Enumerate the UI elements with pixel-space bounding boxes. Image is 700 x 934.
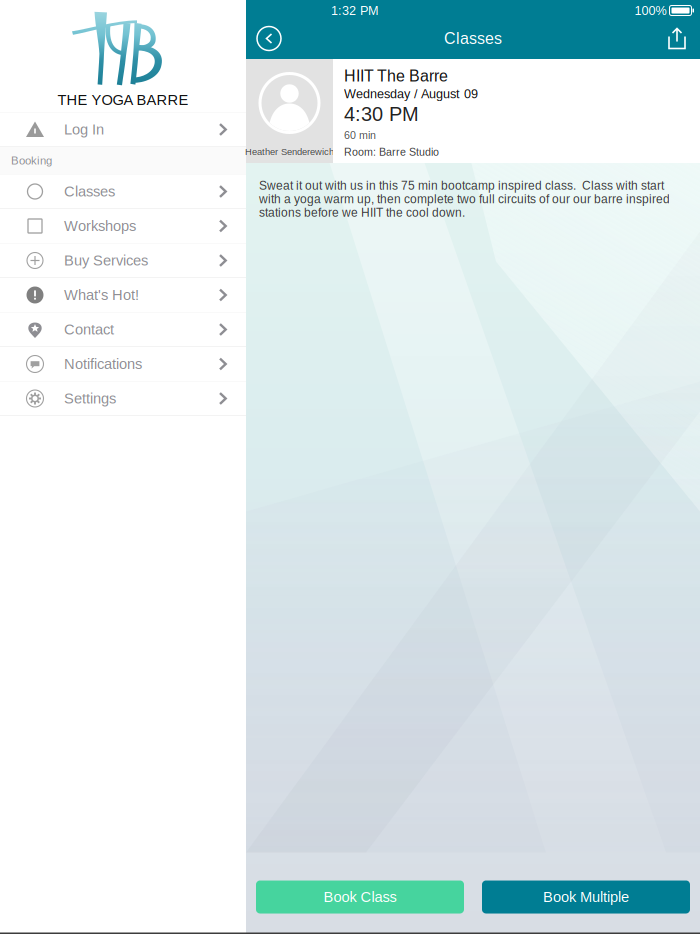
staticText: What's Hot! — [64, 287, 139, 303]
button[interactable]: Notifications — [0, 347, 246, 381]
staticText: Booking — [11, 154, 52, 167]
staticText: Settings — [64, 390, 116, 407]
staticText: Book Class — [323, 889, 396, 905]
button[interactable]: Book Multiple — [482, 880, 690, 913]
staticText: Notifications — [64, 356, 142, 372]
staticText: THE YOGA BARRE — [57, 92, 188, 108]
staticText: Classes — [64, 183, 115, 200]
button[interactable]: Buy Services — [0, 243, 246, 277]
button[interactable]: Workshops — [0, 209, 246, 243]
button[interactable]: Contact — [0, 312, 246, 346]
button[interactable]: Settings — [0, 381, 246, 415]
button[interactable]: Book Class — [256, 880, 464, 913]
staticText: Buy Services — [64, 252, 148, 269]
staticText: Heather Senderewich — [245, 147, 334, 157]
staticText: Contact — [64, 321, 114, 338]
staticText: Room: Barre Studio — [344, 146, 439, 158]
staticText: Classes — [444, 30, 502, 47]
staticText: HIIT The Barre — [344, 67, 448, 85]
button[interactable]: Log In — [0, 112, 246, 146]
button[interactable]: Share — [654, 19, 700, 57]
staticText: 60 min — [344, 129, 376, 141]
button[interactable]: Classes — [0, 174, 246, 208]
staticText: Book Multiple — [543, 889, 629, 905]
staticText: Log In — [64, 121, 104, 138]
staticText: 100% — [634, 3, 666, 18]
button[interactable]: Back — [246, 19, 292, 57]
staticText: Wednesday / August 09 — [344, 87, 478, 101]
staticText: Sweat it out with us in this 75 min boot… — [259, 179, 670, 219]
staticText: 1:32 PM — [331, 3, 379, 18]
staticText: 4:30 PM — [344, 103, 419, 125]
button[interactable]: What's Hot! — [0, 278, 246, 312]
staticText: Workshops — [64, 218, 136, 234]
